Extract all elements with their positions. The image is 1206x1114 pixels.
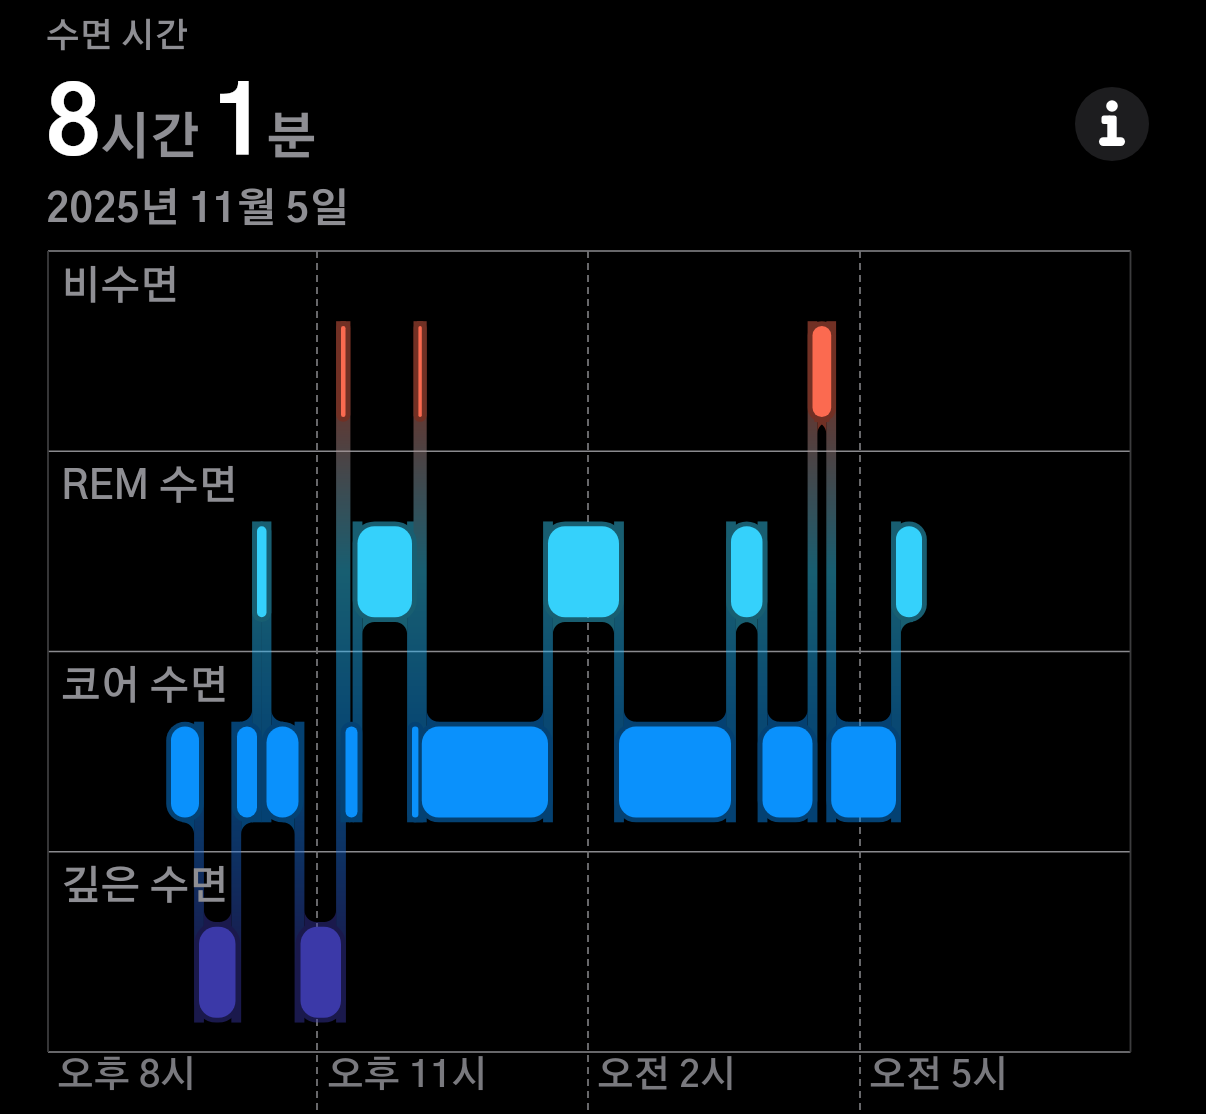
staticText: REM 수면 (61, 467, 238, 507)
staticText: 깊은 수면 (61, 867, 229, 907)
staticText: 오후 11시 (327, 1057, 488, 1094)
button[interactable]: 정보 (1075, 87, 1149, 161)
staticText: 8시간 1분 (46, 80, 317, 173)
staticText: 오전 5시 (869, 1057, 1009, 1094)
staticText: 2025년 11월 5일 (46, 190, 350, 230)
staticText: 수면 시간 (46, 20, 189, 54)
staticText: 비수면 (61, 267, 180, 307)
staticText: 오전 2시 (597, 1057, 737, 1094)
staticText: 코어 수면 (61, 667, 229, 707)
staticText: 오후 8시 (57, 1057, 197, 1094)
